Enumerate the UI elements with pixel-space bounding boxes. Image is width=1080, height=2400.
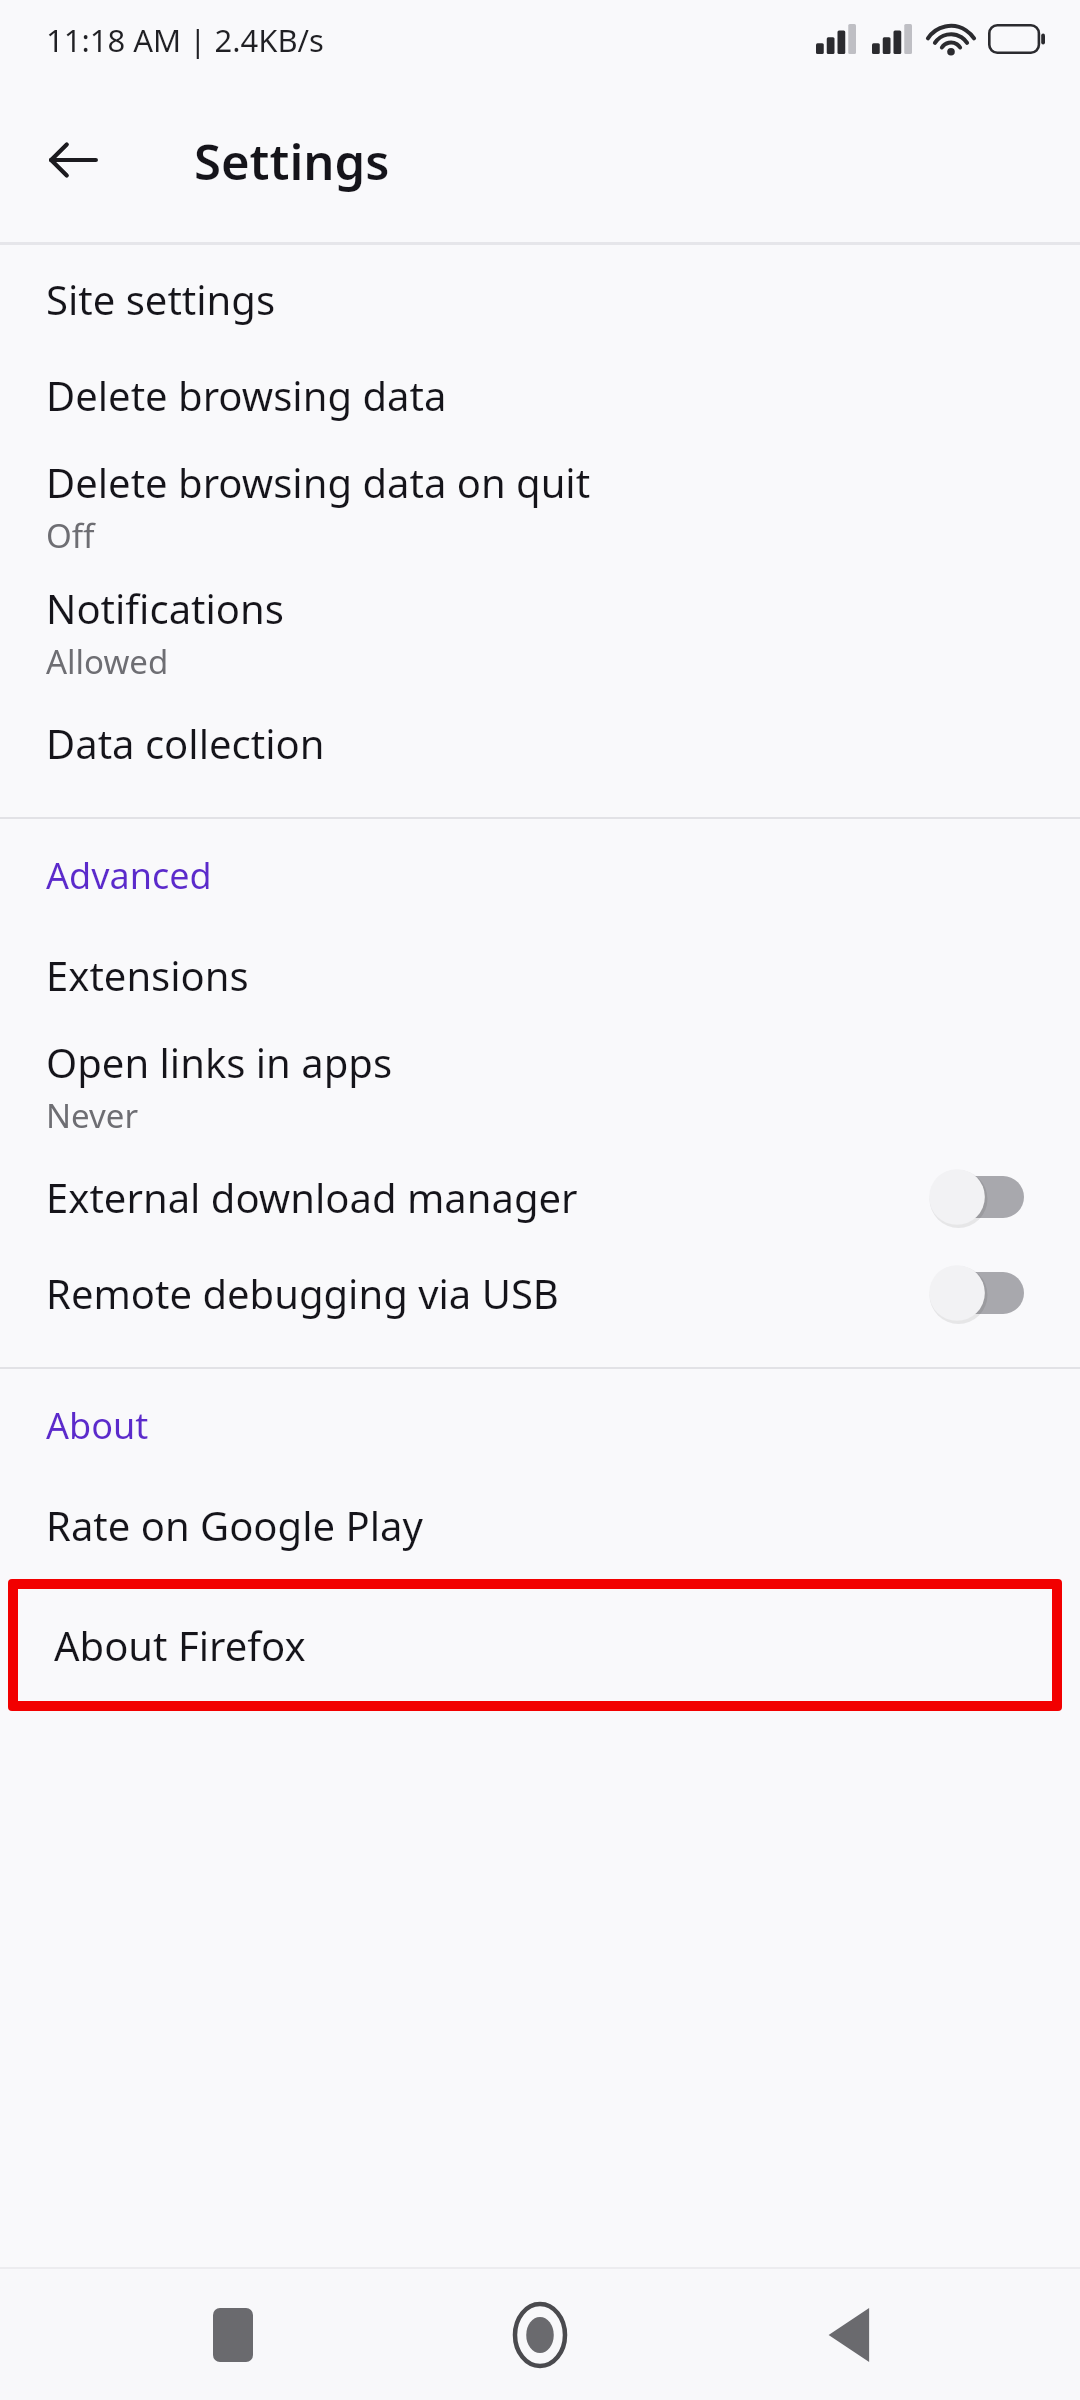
button[interactable]: Extensions	[0, 927, 1080, 1023]
staticText: About	[46, 1401, 149, 1450]
button[interactable]: Data collection	[0, 695, 1080, 791]
staticText: Delete browsing data	[46, 368, 447, 422]
button[interactable]: Back	[773, 2275, 923, 2395]
button[interactable]: Rate on Google Play	[0, 1477, 1080, 1573]
button[interactable]: Toggle off	[924, 1255, 1028, 1331]
staticText: Delete browsing data on quit	[46, 455, 591, 509]
staticText: Extensions	[46, 948, 249, 1002]
button[interactable]: Notifications	[0, 569, 1080, 695]
button[interactable]: Open links in apps	[0, 1023, 1080, 1149]
button[interactable]: Recent apps	[158, 2275, 308, 2395]
staticText: Settings	[194, 128, 390, 195]
button[interactable]: About Firefox	[18, 1589, 1052, 1701]
button[interactable]: Home	[465, 2275, 615, 2395]
staticText: External download manager	[46, 1170, 578, 1224]
staticText: Allowed	[46, 639, 169, 684]
staticText: 11:18 AM | 2.4KB/s	[46, 19, 324, 61]
staticText: Site settings	[46, 272, 276, 326]
staticText: Rate on Google Play	[46, 1498, 423, 1552]
staticText: Data collection	[46, 716, 325, 770]
staticText: Advanced	[46, 851, 212, 900]
staticText: Notifications	[46, 581, 284, 635]
button[interactable]: Toggle off	[924, 1159, 1028, 1235]
staticText: Open links in apps	[46, 1035, 393, 1089]
staticText: Never	[46, 1093, 139, 1138]
staticText: Off	[46, 513, 95, 558]
button[interactable]: Site settings	[0, 251, 1080, 347]
button[interactable]: Navigate up	[26, 113, 120, 207]
button[interactable]: Remote debugging via USB	[0, 1245, 1080, 1341]
staticText: Remote debugging via USB	[46, 1266, 559, 1320]
staticText: About Firefox	[54, 1618, 306, 1672]
button[interactable]: External download manager	[0, 1149, 1080, 1245]
button[interactable]: Delete browsing data	[0, 347, 1080, 443]
button[interactable]: Delete browsing data on quit	[0, 443, 1080, 569]
